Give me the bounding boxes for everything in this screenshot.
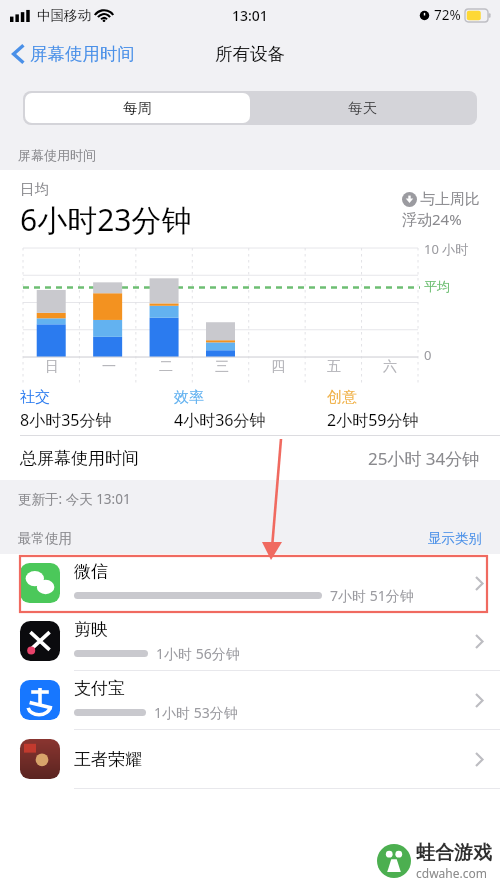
staticText: 13:01 [232, 6, 268, 25]
staticText: 72% [434, 6, 461, 24]
staticText: 支付宝 [74, 678, 125, 699]
staticText: 六 [383, 358, 397, 376]
staticText: 王者荣耀 [74, 749, 142, 770]
staticText: 一 [102, 358, 116, 376]
button[interactable]: 每周 [25, 93, 250, 123]
button[interactable]: 剪映 [0, 612, 500, 671]
staticText: 显示类别 [428, 530, 482, 547]
staticText: 屏幕使用时间 [18, 147, 96, 163]
staticText: 屏幕使用时间 [30, 43, 135, 65]
staticText: 剪映 [74, 619, 108, 640]
staticText: 1小时 56分钟 [156, 644, 240, 663]
staticText: cdwahe.com [416, 865, 487, 881]
staticText: 8小时35分钟 [20, 409, 112, 431]
staticText: 五 [327, 358, 341, 376]
staticText: 平均 [424, 278, 450, 294]
staticText: 四 [271, 358, 285, 376]
staticText: 每天 [348, 99, 377, 117]
staticText: 三 [215, 358, 229, 376]
staticText: 所有设备 [215, 43, 285, 65]
staticText: 创意 [327, 388, 357, 407]
button[interactable]: 支付宝 [0, 671, 500, 730]
staticText: 2小时59分钟 [327, 409, 419, 431]
staticText: 7小时 51分钟 [330, 586, 414, 605]
staticText: 25小时 34分钟 [368, 447, 480, 470]
button[interactable]: 微信 [0, 554, 500, 612]
button[interactable]: 显示类别 [428, 530, 482, 547]
staticText: 日均 [20, 180, 49, 198]
staticText: 与上周比 [420, 190, 480, 209]
staticText: 4小时36分钟 [174, 409, 266, 431]
button[interactable]: 王者荣耀 [0, 730, 500, 789]
button[interactable]: 总屏幕使用时间 [0, 436, 500, 480]
staticText: 总屏幕使用时间 [20, 448, 139, 469]
staticText: 社交 [20, 388, 50, 407]
staticText: 浮动24% [402, 209, 462, 229]
staticText: 日 [45, 358, 59, 376]
staticText: 二 [159, 358, 173, 376]
staticText: 10 小时 [424, 240, 469, 258]
staticText: 效率 [174, 388, 204, 407]
staticText: 6小时23分钟 [20, 199, 192, 240]
staticText: 每周 [123, 99, 152, 117]
staticText: 最常使用 [18, 530, 72, 547]
staticText: 0 [424, 346, 432, 364]
button[interactable]: 每天 [250, 93, 475, 123]
staticText: 蛙合游戏 [416, 841, 492, 865]
button[interactable]: 屏幕使用时间 [12, 39, 143, 69]
staticText: 更新于: 今天 13:01 [18, 490, 131, 508]
staticText: 微信 [74, 561, 108, 582]
staticText: 中国移动 [37, 7, 91, 24]
staticText: 1小时 53分钟 [154, 703, 238, 722]
